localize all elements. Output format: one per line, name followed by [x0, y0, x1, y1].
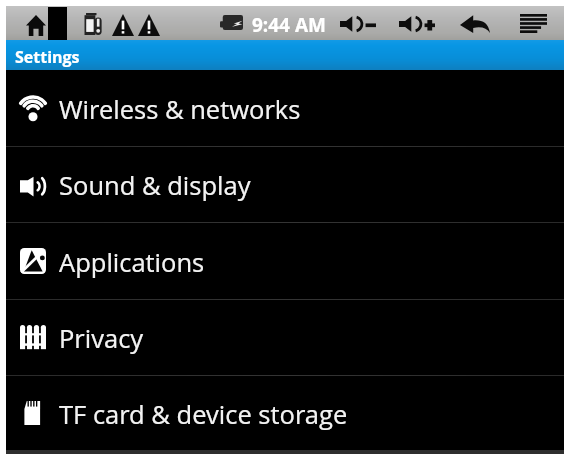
button[interactable]: Privacy [6, 300, 564, 375]
button[interactable]: Home [26, 15, 46, 36]
staticText: Privacy [59, 321, 144, 356]
button[interactable]: Wireless & networks [6, 70, 564, 146]
staticText: 9:44 AM [252, 12, 326, 38]
button[interactable]: Volume up [399, 16, 435, 32]
staticText: TF card & device storage [59, 397, 348, 432]
staticText: Settings [15, 46, 80, 68]
staticText: Sound & display [59, 168, 251, 203]
button[interactable]: Settings [6, 40, 564, 70]
staticText: Applications [59, 245, 205, 280]
button[interactable]: Sound & display [6, 147, 564, 222]
other: Battery charging [220, 15, 243, 30]
button[interactable]: Applications [6, 223, 564, 299]
button[interactable]: Back [460, 15, 490, 33]
button[interactable]: TF card & device storage [6, 376, 564, 450]
button[interactable]: Volume down [340, 16, 376, 32]
button[interactable]: Menu [520, 14, 547, 33]
staticText: Wireless & networks [59, 92, 301, 127]
